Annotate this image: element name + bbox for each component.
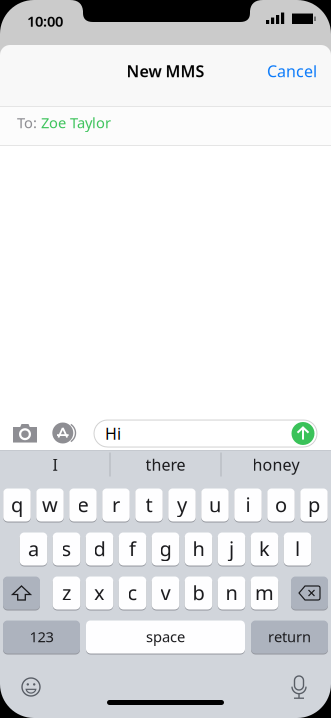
button[interactable]: e (69, 488, 97, 522)
button[interactable]: return (251, 620, 328, 654)
button[interactable]: c (119, 576, 146, 610)
button[interactable]: Emoji (20, 676, 42, 698)
staticText: f (129, 535, 136, 562)
button[interactable]: h (185, 532, 212, 566)
staticText: q (11, 491, 23, 518)
button[interactable]: there (110, 448, 220, 481)
button[interactable]: x (86, 576, 113, 610)
button[interactable]: z (53, 576, 80, 610)
staticText: k (259, 535, 270, 562)
button[interactable]: Dictate (288, 675, 310, 699)
staticText: g (159, 535, 171, 562)
button[interactable]: d (86, 532, 113, 566)
staticText: u (209, 491, 221, 518)
staticText: Zoe Taylor (37, 113, 111, 132)
staticText: d (93, 535, 105, 562)
button[interactable]: u (201, 488, 229, 522)
staticText: To: (17, 113, 37, 132)
staticText: p (308, 491, 320, 518)
button[interactable]: o (267, 488, 295, 522)
staticText: return (268, 627, 311, 646)
staticText: o (275, 491, 287, 518)
staticText: s (61, 535, 71, 562)
staticText: l (295, 535, 300, 562)
staticText: b (192, 579, 204, 606)
button[interactable]: a (20, 532, 47, 566)
button[interactable]: Send (291, 422, 314, 445)
button[interactable]: s (53, 532, 80, 566)
staticText: n (225, 579, 237, 606)
button[interactable]: w (36, 488, 64, 522)
button[interactable]: y (168, 488, 196, 522)
staticText: m (255, 579, 274, 606)
button[interactable]: g (152, 532, 179, 566)
staticText: space (146, 627, 185, 646)
button[interactable]: Camera (13, 423, 37, 442)
staticText: x (94, 579, 105, 606)
staticText: y (177, 491, 187, 518)
button[interactable]: Apps (51, 421, 77, 445)
button[interactable]: honey (221, 448, 330, 481)
button[interactable]: Delete (291, 576, 328, 610)
button[interactable]: I (0, 448, 109, 481)
staticText: I (52, 454, 57, 475)
staticText: Hi (105, 423, 121, 444)
button[interactable]: Shift (3, 576, 40, 610)
button[interactable]: j (218, 532, 245, 566)
button[interactable]: k (251, 532, 278, 566)
button[interactable]: b (185, 576, 212, 610)
button[interactable]: v (152, 576, 179, 610)
button[interactable]: l (284, 532, 311, 566)
staticText: j (229, 535, 234, 562)
button[interactable]: i (234, 488, 262, 522)
staticText: there (145, 454, 185, 475)
button[interactable]: space (86, 620, 245, 654)
staticText: r (112, 491, 120, 518)
button[interactable]: f (119, 532, 146, 566)
staticText: z (62, 579, 71, 606)
staticText: a (28, 535, 39, 562)
staticText: Cancel (267, 60, 317, 82)
button[interactable]: 123 (3, 620, 80, 654)
staticText: h (192, 535, 204, 562)
staticText: v (160, 579, 170, 606)
staticText: t (145, 491, 152, 518)
staticText: c (127, 579, 137, 606)
staticText: honey (252, 454, 299, 475)
button[interactable]: r (102, 488, 130, 522)
button[interactable]: p (300, 488, 328, 522)
button[interactable]: m (251, 576, 278, 610)
staticText: 123 (29, 627, 53, 646)
staticText: i (245, 491, 250, 518)
button[interactable]: q (3, 488, 31, 522)
staticText: e (77, 491, 88, 518)
staticText: w (42, 491, 58, 518)
staticText: New MMS (126, 60, 204, 82)
button[interactable]: Cancel (267, 65, 331, 86)
button[interactable]: n (218, 576, 245, 610)
staticText: 10:00 (27, 11, 63, 31)
button[interactable]: t (135, 488, 163, 522)
